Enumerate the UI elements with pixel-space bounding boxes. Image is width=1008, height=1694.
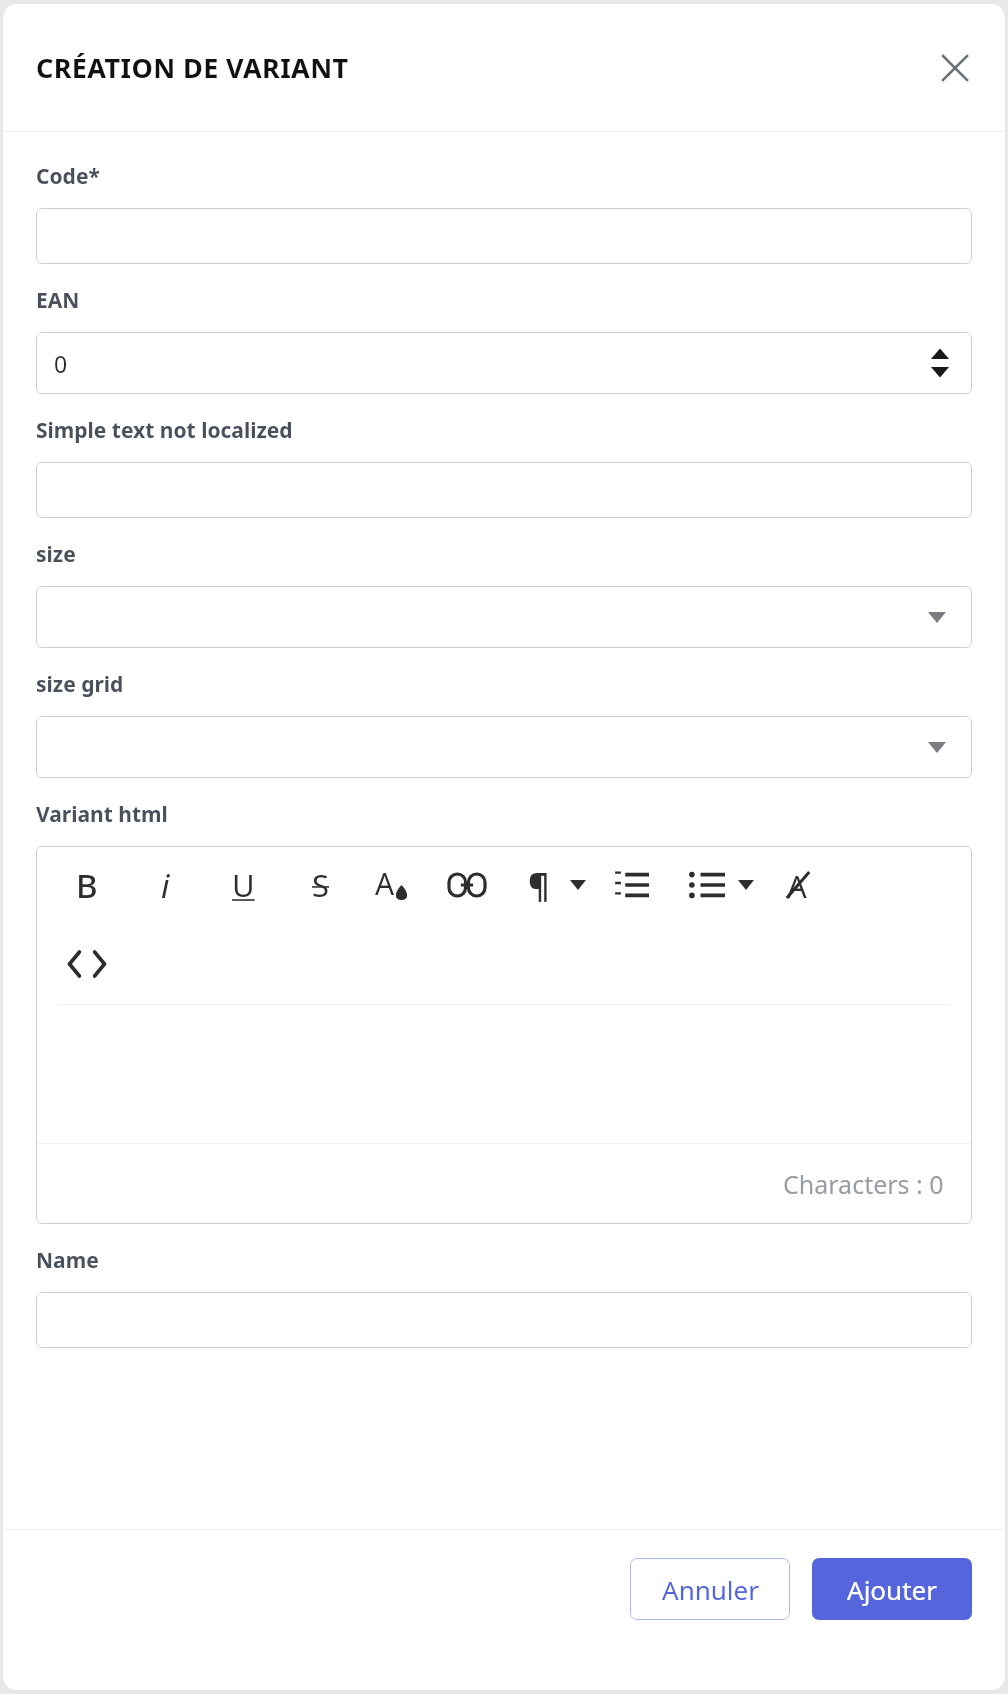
staticText: Variant html (36, 800, 168, 829)
staticText: i (161, 863, 170, 908)
staticText: 0 (54, 348, 68, 379)
button[interactable]: Couleur du texte (370, 862, 416, 908)
staticText: EAN (36, 286, 80, 315)
button[interactable]: Barré (298, 862, 344, 908)
staticText: Simple text not localized (36, 416, 293, 445)
button[interactable]: Lien (444, 862, 490, 908)
staticText: A (787, 865, 807, 905)
staticText: Name (36, 1246, 99, 1275)
button[interactable]: Ajouter (812, 1558, 972, 1620)
button[interactable] (36, 208, 972, 264)
button[interactable] (36, 1292, 972, 1348)
staticText: Ajouter (847, 1572, 937, 1607)
staticText: ¶ (528, 863, 550, 908)
staticText: Annuler (662, 1572, 759, 1607)
button[interactable]: Fermer (931, 44, 979, 92)
button[interactable]: Italique (142, 862, 188, 908)
button[interactable]: 0 (36, 332, 972, 394)
button[interactable]: Code source (64, 941, 110, 987)
staticText: S (312, 864, 330, 906)
staticText: A (375, 863, 395, 904)
button[interactable] (36, 462, 972, 518)
button[interactable]: Annuler (630, 1558, 790, 1620)
button[interactable]: Gras (64, 862, 110, 908)
staticText: U (232, 864, 255, 906)
button[interactable]: Paragraphe (516, 862, 562, 908)
button[interactable]: Sélectionner (36, 586, 972, 648)
button[interactable]: Effacer la mise en forme (774, 862, 820, 908)
staticText: CRÉATION DE VARIANT (36, 49, 349, 86)
button[interactable]: Liste à puces (684, 862, 730, 908)
staticText: size (36, 540, 76, 569)
staticText: size grid (36, 670, 124, 699)
button[interactable]: Souligner (220, 862, 266, 908)
staticText: B (76, 863, 98, 908)
button[interactable]: Sélectionner (36, 716, 972, 778)
button[interactable]: Liste numérotée (608, 862, 654, 908)
staticText: Code* (36, 162, 100, 191)
staticText: Characters : 0 (783, 1167, 944, 1201)
